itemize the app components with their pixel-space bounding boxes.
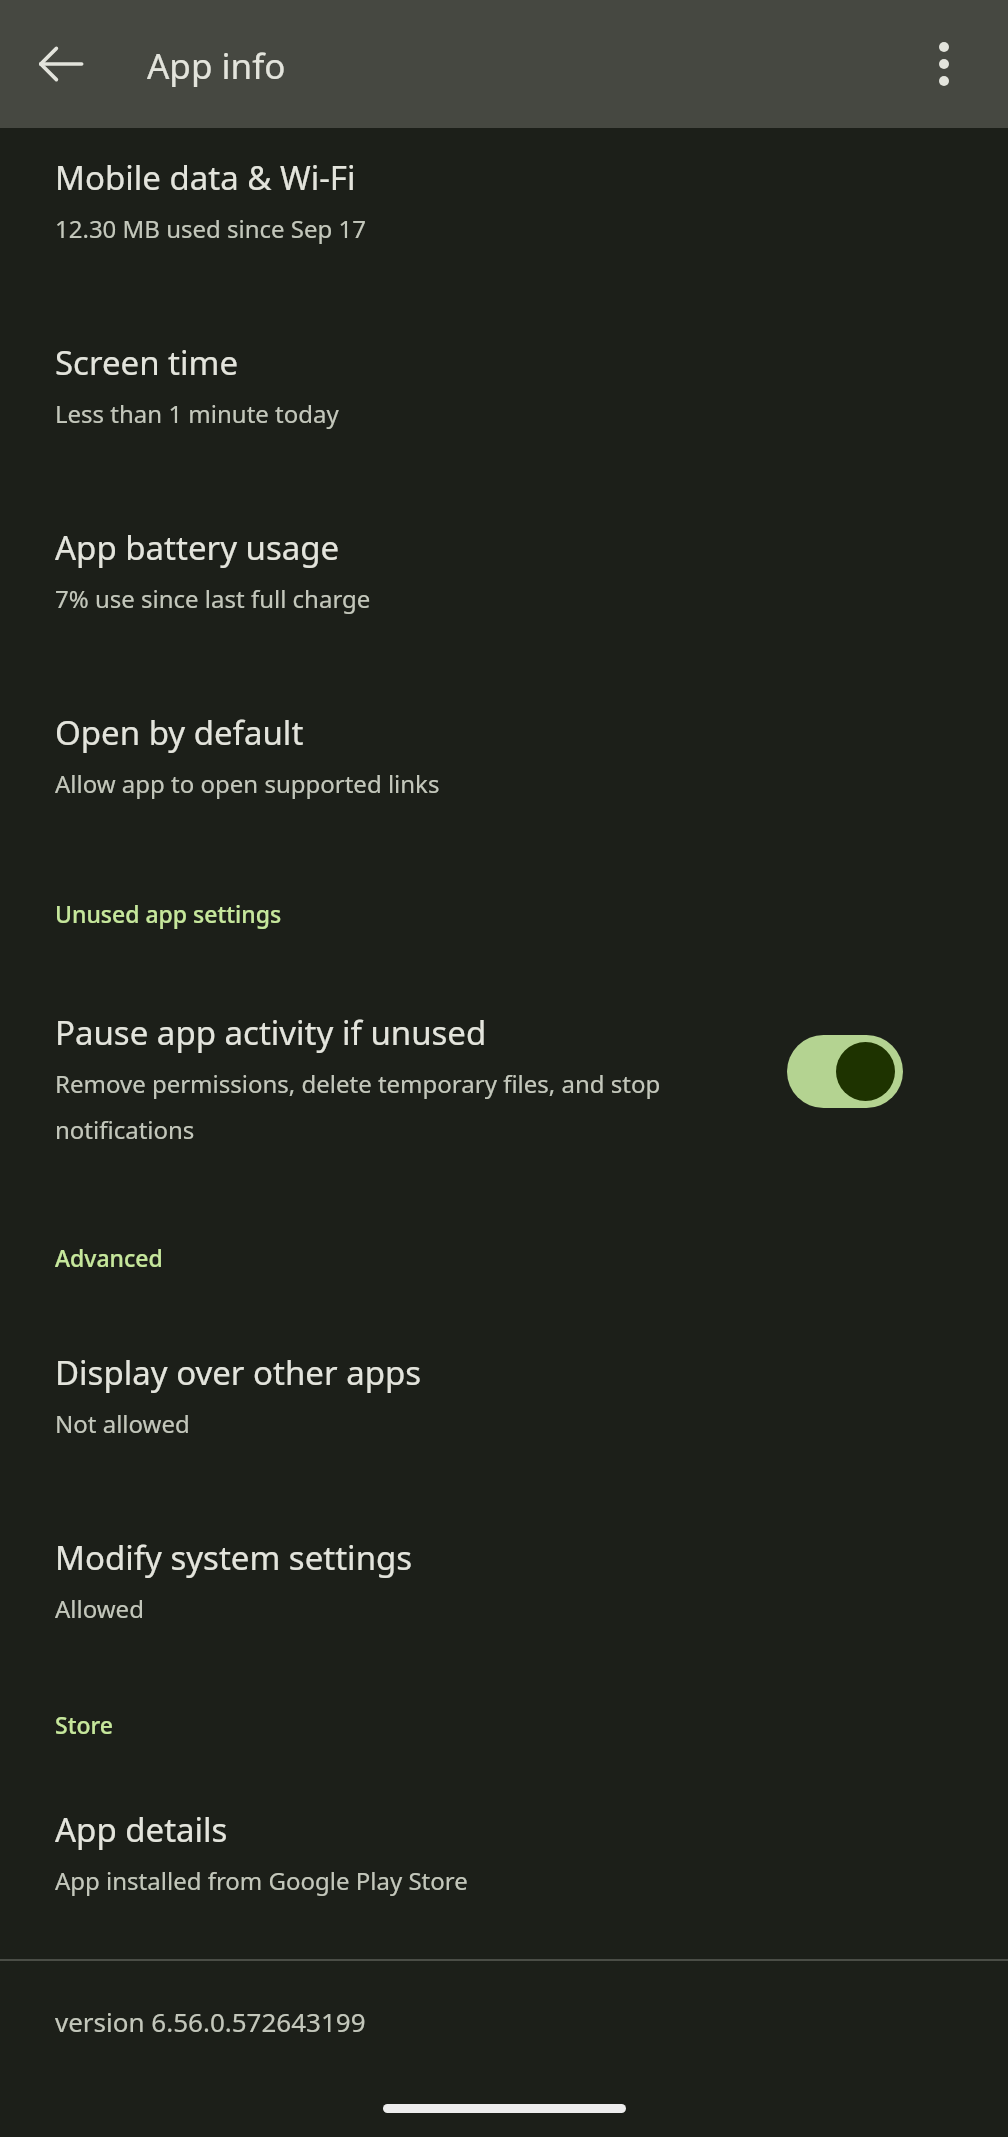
staticText: Modify system settings bbox=[55, 1535, 413, 1580]
button[interactable]: Mobile data & Wi-Fi bbox=[0, 140, 1008, 265]
staticText: 12.30 MB used since Sep 17 bbox=[55, 212, 367, 245]
staticText: version 6.56.0.572643199 bbox=[55, 2004, 366, 2039]
staticText: Open by default bbox=[55, 710, 304, 755]
staticText: Remove permissions, delete temporary fil… bbox=[55, 1067, 775, 1146]
button[interactable]: Pause app activity if unused bbox=[0, 995, 1008, 1180]
button[interactable]: Screen time bbox=[0, 325, 1008, 450]
button[interactable]: App battery usage bbox=[0, 510, 1008, 635]
button[interactable]: App details bbox=[0, 1792, 1008, 1917]
staticText: Less than 1 minute today bbox=[55, 397, 339, 430]
staticText: App installed from Google Play Store bbox=[55, 1864, 468, 1897]
staticText: Mobile data & Wi-Fi bbox=[55, 155, 356, 200]
button[interactable]: Navigate up bbox=[14, 17, 108, 111]
staticText: Advanced bbox=[55, 1242, 163, 1273]
staticText: Screen time bbox=[55, 340, 239, 385]
staticText: App details bbox=[55, 1807, 228, 1852]
staticText: 7% use since last full charge bbox=[55, 582, 371, 615]
staticText: Unused app settings bbox=[55, 898, 282, 929]
button[interactable]: More options bbox=[897, 17, 991, 111]
staticText: Allow app to open supported links bbox=[55, 767, 440, 800]
button[interactable]: Modify system settings bbox=[0, 1520, 1008, 1645]
staticText: Display over other apps bbox=[55, 1350, 422, 1395]
staticText: App info bbox=[147, 42, 286, 90]
staticText: Store bbox=[55, 1709, 113, 1740]
staticText: Not allowed bbox=[55, 1407, 190, 1440]
staticText: Allowed bbox=[55, 1592, 144, 1625]
staticText: App battery usage bbox=[55, 525, 340, 570]
button[interactable]: Pause app activity if unused, on bbox=[787, 1035, 903, 1108]
staticText: Pause app activity if unused bbox=[55, 1010, 487, 1055]
button[interactable]: Open by default bbox=[0, 695, 1008, 820]
button[interactable]: Display over other apps bbox=[0, 1335, 1008, 1460]
